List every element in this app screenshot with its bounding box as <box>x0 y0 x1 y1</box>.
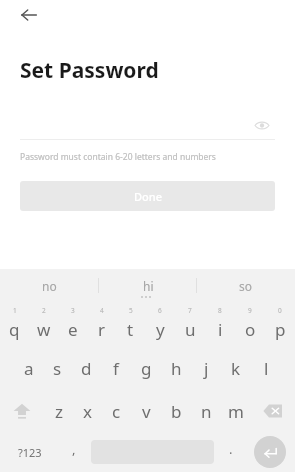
button[interactable]: no <box>0 269 99 302</box>
staticText: 4 <box>100 306 104 315</box>
staticText: 6 <box>158 306 162 315</box>
staticText: Done <box>134 189 162 204</box>
staticText: r <box>98 318 106 341</box>
staticText: z <box>55 400 63 423</box>
staticText: m <box>228 400 244 423</box>
staticText: 7 <box>188 306 192 315</box>
staticText: 8 <box>218 306 222 315</box>
button[interactable]: 3 <box>58 304 87 346</box>
button[interactable]: . <box>217 432 245 472</box>
button[interactable]: 9 <box>235 304 265 346</box>
staticText: b <box>171 400 182 423</box>
button[interactable]: g <box>131 346 161 390</box>
button[interactable]: n <box>191 390 221 432</box>
button[interactable]: 8 <box>205 304 235 346</box>
button[interactable]: 5 <box>116 304 145 346</box>
staticText: u <box>185 318 196 341</box>
staticText: l <box>264 357 269 380</box>
staticText: n <box>201 400 212 423</box>
staticText: c <box>112 400 121 423</box>
button[interactable]: z <box>44 390 73 432</box>
button[interactable]: 0 <box>265 304 295 346</box>
button[interactable]: x <box>73 390 102 432</box>
staticText: d <box>81 357 92 380</box>
staticText: o <box>245 318 256 341</box>
button[interactable]: a <box>14 346 43 390</box>
button[interactable]: Backspace <box>251 390 295 432</box>
staticText: 1 <box>13 306 17 315</box>
button[interactable]: Back <box>12 1 46 29</box>
staticText: Password must contain 6-20 letters and n… <box>20 151 216 163</box>
button[interactable]: s <box>43 346 72 390</box>
staticText: q <box>9 318 20 341</box>
staticText: j <box>204 357 209 380</box>
staticText: hi <box>143 278 154 294</box>
button[interactable]: ?123 <box>0 432 60 472</box>
button[interactable]: 7 <box>175 304 205 346</box>
button[interactable]: 6 <box>145 304 175 346</box>
button[interactable]: m <box>221 390 251 432</box>
button[interactable]: Show password <box>249 113 275 137</box>
button[interactable]: c <box>102 390 131 432</box>
staticText: 0 <box>278 306 282 315</box>
staticText: f <box>113 357 119 380</box>
button[interactable]: k <box>221 346 251 390</box>
staticText: i <box>218 318 223 341</box>
staticText: v <box>142 400 151 423</box>
staticText: a <box>24 357 34 380</box>
staticText: p <box>275 318 286 341</box>
button[interactable]: Enter <box>245 432 295 472</box>
staticText: ?123 <box>18 445 42 460</box>
staticText: no <box>42 278 57 294</box>
button[interactable]: Shift <box>0 390 44 432</box>
staticText: so <box>239 278 253 294</box>
staticText: 3 <box>71 306 75 315</box>
button[interactable]: hi <box>99 269 197 302</box>
button[interactable]: f <box>101 346 131 390</box>
staticText: e <box>68 318 78 341</box>
staticText: s <box>53 357 62 380</box>
button[interactable]: v <box>131 390 161 432</box>
button[interactable]: 4 <box>87 304 116 346</box>
button[interactable]: l <box>251 346 281 390</box>
staticText: 5 <box>129 306 133 315</box>
staticText: , <box>72 440 76 458</box>
staticText: k <box>231 357 241 380</box>
button[interactable]: 2 <box>29 304 58 346</box>
button[interactable]: h <box>161 346 191 390</box>
staticText: 9 <box>248 306 252 315</box>
staticText: g <box>141 357 152 380</box>
button[interactable]: d <box>72 346 101 390</box>
button[interactable]: b <box>161 390 191 432</box>
staticText: . <box>229 440 233 458</box>
staticText: y <box>156 318 165 341</box>
button[interactable]: 1 <box>0 304 29 346</box>
staticText: w <box>37 318 51 341</box>
staticText: 2 <box>42 306 46 315</box>
button[interactable]: j <box>191 346 221 390</box>
staticText: Set Password <box>20 56 159 85</box>
staticText: x <box>83 400 92 423</box>
staticText: t <box>127 318 134 341</box>
button[interactable]: so <box>197 269 295 302</box>
staticText: h <box>171 357 182 380</box>
button[interactable]: , <box>60 432 88 472</box>
